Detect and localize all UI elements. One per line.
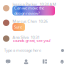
staticText: Type a message here (4, 48, 41, 53)
staticText: sounds great, see you! (12, 38, 50, 43)
staticText: Marcus Chen 10:26 (12, 19, 47, 24)
staticText: Ana Silva 10:31 (12, 35, 39, 40)
staticText: Jessica Parker 10:24 AM (12, 2, 56, 7)
staticText: Can we move the design review? (14, 5, 44, 16)
staticText: Sure (14, 24, 22, 30)
